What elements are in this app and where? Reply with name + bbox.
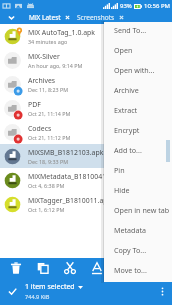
staticText: Dec 11, 8:23 PM (28, 86, 69, 93)
button[interactable]: MiX Latest (29, 11, 70, 24)
staticText: An hour ago, 9:14 PM (28, 62, 83, 69)
staticText: MiXTagger_B1810011.apk (28, 196, 112, 205)
staticText: Move to... (114, 265, 147, 275)
button[interactable]: MiX-Silver (0, 48, 172, 72)
button[interactable]: Cut (56, 258, 83, 277)
button[interactable]: Pin (104, 160, 172, 180)
staticText: Dec 18, 9:33 PM (28, 158, 69, 165)
button[interactable]: Copy (29, 258, 56, 277)
button[interactable]: MiXTagger_B1810011.apk (0, 192, 172, 216)
button[interactable]: Extract (104, 100, 172, 120)
staticText: 744.9 KiB (25, 293, 50, 301)
staticText: Oct 1, 6:12 PM (28, 206, 65, 213)
staticText: Open in new tab (114, 205, 170, 215)
staticText: Pin (114, 165, 125, 175)
staticText: PDF (28, 100, 41, 109)
button[interactable]: Archives (0, 72, 172, 96)
button[interactable]: More options (152, 277, 172, 305)
button[interactable]: Archive (104, 80, 172, 100)
button[interactable]: PDF (0, 96, 172, 120)
staticText: MiX-Silver (28, 52, 60, 61)
button[interactable]: Open in new tab (104, 200, 172, 220)
button[interactable]: Codecs (0, 120, 172, 144)
button[interactable]: Delete (3, 258, 29, 277)
staticText: Oct 21, 11:12 PM (28, 134, 71, 141)
button[interactable]: Encrypt (104, 120, 172, 140)
staticText: Hide (114, 185, 130, 195)
staticText: MiXSMB_B1812103.apk (28, 148, 104, 157)
staticText: Open with... (114, 65, 155, 75)
button[interactable]: MiXSMB_B1812103.apk (0, 144, 172, 168)
button[interactable]: MiX AutoTag_1.0.apk (0, 24, 172, 48)
button[interactable]: Add to... (104, 140, 172, 160)
button[interactable]: Move to... (104, 260, 172, 280)
staticText: 34 minutes ago (28, 38, 68, 45)
button[interactable]: Hide (104, 180, 172, 200)
staticText: MiX Latest (29, 13, 61, 22)
staticText: Oct 4, 6:38 PM (28, 182, 65, 189)
staticText: 93% (120, 2, 132, 10)
staticText: 1 item selected (25, 282, 75, 292)
button[interactable]: 1 item selected (0, 277, 172, 305)
staticText: Open (114, 45, 133, 55)
button[interactable]: Metadata (104, 220, 172, 240)
button[interactable]: Open (104, 40, 172, 60)
staticText: Encrypt (114, 125, 140, 135)
staticText: Screenshots (77, 13, 115, 22)
staticText: Metadata (114, 225, 147, 235)
button[interactable]: Copy To... (104, 240, 172, 260)
staticText: 10:56 PM (144, 2, 170, 10)
staticText: Archive (114, 85, 139, 95)
button[interactable]: Open with... (104, 60, 172, 80)
staticText: MiX AutoTag_1.0.apk (28, 28, 95, 37)
button[interactable]: Rename (83, 258, 110, 277)
staticText: Codecs (28, 124, 52, 133)
staticText: Send To... (114, 25, 147, 35)
staticText: Archives (28, 76, 56, 85)
staticText: MiXMetadata_B1810041.apk (28, 172, 120, 181)
button[interactable]: MiXMetadata_B1810041.apk (0, 168, 172, 192)
button[interactable]: Screenshots (77, 11, 124, 24)
button[interactable]: Send To... (104, 20, 172, 40)
staticText: Extract (114, 105, 138, 115)
staticText: Add to... (114, 145, 142, 155)
staticText: Oct 21, 11:14 PM (28, 110, 71, 117)
staticText: Copy To... (114, 245, 147, 255)
button[interactable]: Show tabs (0, 11, 22, 24)
